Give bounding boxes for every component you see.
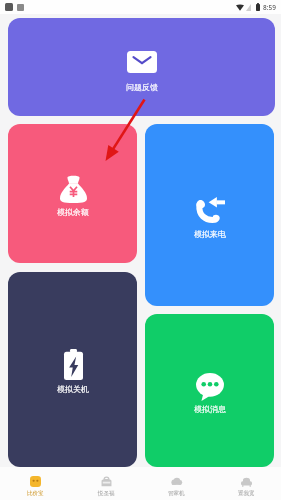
button[interactable]: 模拟来电 [145, 124, 274, 306]
staticText: 比价宝 [27, 490, 44, 497]
staticText: 8:59 [263, 3, 276, 12]
staticText: 管家机 [168, 490, 185, 497]
staticText: 置我宽 [238, 490, 255, 497]
button[interactable]: 管家机 [141, 467, 211, 500]
staticText: 模拟来电 [194, 229, 226, 239]
button[interactable]: 模拟关机 [8, 272, 137, 467]
button[interactable]: 问题反馈 [8, 18, 275, 116]
button[interactable]: 置我宽 [211, 467, 281, 500]
button[interactable]: 比价宝 [0, 467, 71, 500]
button[interactable]: 悦圣福 [71, 467, 141, 500]
staticText: 模拟消息 [194, 404, 226, 414]
button[interactable]: 模拟余额 [8, 124, 137, 263]
staticText: 问题反馈 [126, 82, 158, 92]
button[interactable]: 模拟消息 [145, 314, 274, 467]
staticText: 模拟关机 [57, 384, 89, 394]
staticText: 悦圣福 [98, 490, 115, 497]
staticText: 模拟余额 [57, 207, 89, 217]
